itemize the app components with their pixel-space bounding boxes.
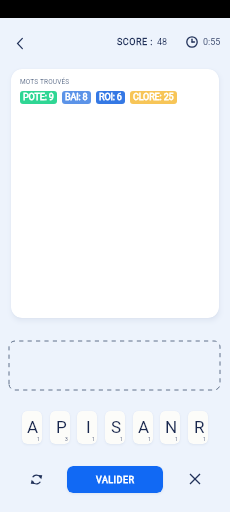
staticText: 1 [37, 436, 40, 442]
staticText: POTE: 9 [23, 92, 54, 103]
button[interactable]: I [77, 411, 97, 444]
button[interactable]: VALIDER [67, 466, 163, 493]
button[interactable]: Shuffle letters [23, 466, 49, 492]
staticText: 1 [175, 436, 178, 442]
staticText: 0:55 [203, 37, 221, 48]
staticText: P [56, 417, 67, 437]
staticText: VALIDER [96, 475, 135, 486]
button[interactable]: Back [8, 32, 30, 54]
staticText: A [138, 417, 150, 437]
button[interactable]: R [188, 411, 208, 444]
staticText: BAI: 8 [65, 92, 88, 103]
staticText: 3 [65, 436, 68, 442]
button[interactable]: A [133, 411, 153, 444]
staticText: S [111, 417, 122, 437]
staticText: N [165, 417, 178, 437]
staticText: 1 [203, 436, 206, 442]
button[interactable]: N [160, 411, 180, 444]
staticText: 1 [148, 436, 151, 442]
button[interactable]: S [105, 411, 125, 444]
staticText: A [27, 417, 39, 437]
staticText: 48 [157, 37, 168, 48]
staticText: 1 [120, 436, 123, 442]
staticText: CLORE: 25 [133, 92, 174, 103]
staticText: 1 [92, 436, 95, 442]
staticText: SCORE : [117, 37, 153, 48]
staticText: I [86, 417, 91, 437]
button[interactable]: A [22, 411, 42, 444]
staticText: ROI: 6 [99, 92, 122, 103]
button[interactable]: P [50, 411, 70, 444]
staticText: R [194, 417, 205, 437]
button[interactable]: Clear selection [182, 466, 208, 492]
staticText: MOTS TROUVÉS [20, 78, 70, 86]
